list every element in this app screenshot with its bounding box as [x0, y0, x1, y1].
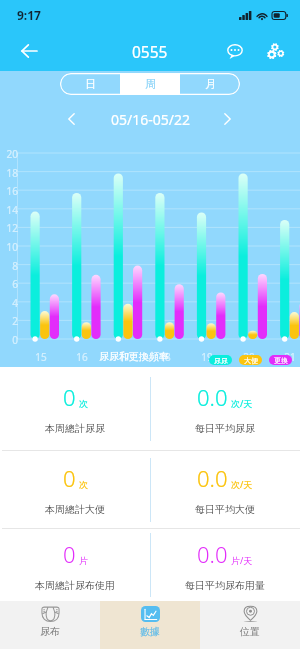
button[interactable]: 0 [0, 367, 150, 450]
button[interactable]: 數據 [100, 601, 200, 649]
staticText: 0 [63, 463, 76, 493]
staticText: 16 [72, 350, 92, 364]
button[interactable]: 尿布 [0, 601, 100, 649]
staticText: 大便 [244, 356, 258, 365]
staticText: 尿尿 [214, 356, 228, 365]
button[interactable]: Messages [220, 36, 250, 66]
button[interactable]: 位置 [200, 601, 300, 649]
staticText: 20 [239, 350, 259, 364]
staticText: 0.0 [197, 463, 228, 493]
button[interactable]: 0.0 [150, 451, 300, 528]
button[interactable]: Next week [217, 109, 237, 129]
staticText: 次/天 [231, 478, 253, 490]
button[interactable]: 月 [180, 73, 240, 95]
staticText: 4 [0, 296, 18, 310]
staticText: 14 [0, 203, 18, 217]
staticText: 0 [63, 382, 76, 412]
staticText: 次/天 [231, 397, 253, 409]
staticText: 9:17 [17, 7, 41, 23]
button[interactable]: Back [14, 36, 44, 66]
staticText: 15 [31, 350, 51, 364]
staticText: 2 [0, 314, 18, 328]
staticText: 0 [63, 539, 76, 569]
button[interactable]: 0.0 [150, 529, 300, 601]
staticText: 更換 [274, 356, 288, 365]
staticText: 尿布 [40, 625, 60, 638]
staticText: 月 [205, 77, 216, 91]
staticText: 21 [280, 350, 300, 364]
staticText: 8 [0, 259, 18, 273]
staticText: 每日平均尿尿 [195, 422, 255, 435]
staticText: 本周總計大便 [45, 503, 105, 516]
button[interactable]: 0 [0, 529, 150, 601]
staticText: 20 [0, 147, 18, 161]
staticText: 片 [79, 555, 88, 566]
staticText: 周 [145, 77, 156, 91]
button[interactable]: 0 [0, 451, 150, 528]
staticText: 次 [79, 479, 88, 490]
staticText: 16 [0, 184, 18, 198]
button[interactable]: 周 [120, 73, 180, 95]
staticText: 日 [85, 77, 96, 91]
staticText: 18 [0, 166, 18, 180]
staticText: 12 [0, 221, 18, 235]
staticText: 片/天 [231, 554, 253, 566]
staticText: 17 [114, 350, 134, 364]
staticText: 每日平均大便 [195, 503, 255, 516]
staticText: 6 [0, 277, 18, 291]
staticText: 尿尿和更換頻率 [99, 350, 169, 363]
button[interactable]: Previous week [61, 109, 81, 129]
staticText: 0.0 [197, 539, 228, 569]
staticText: 0555 [132, 41, 168, 62]
staticText: 次 [79, 398, 88, 409]
staticText: 本周總計尿尿 [45, 422, 105, 435]
button[interactable]: Settings [261, 36, 291, 66]
staticText: 數據 [140, 625, 160, 638]
button[interactable]: 0.0 [150, 367, 300, 450]
button[interactable]: 日 [60, 73, 120, 95]
staticText: 位置 [240, 625, 260, 638]
staticText: 19 [197, 350, 217, 364]
staticText: 每日平均尿布用量 [185, 579, 265, 592]
staticText: 05/16-05/22 [111, 110, 190, 129]
staticText: 0.0 [197, 382, 228, 412]
staticText: 本周總計尿布使用 [35, 579, 115, 592]
staticText: 0 [0, 333, 18, 347]
staticText: 10 [0, 240, 18, 254]
staticText: 18 [155, 350, 175, 364]
